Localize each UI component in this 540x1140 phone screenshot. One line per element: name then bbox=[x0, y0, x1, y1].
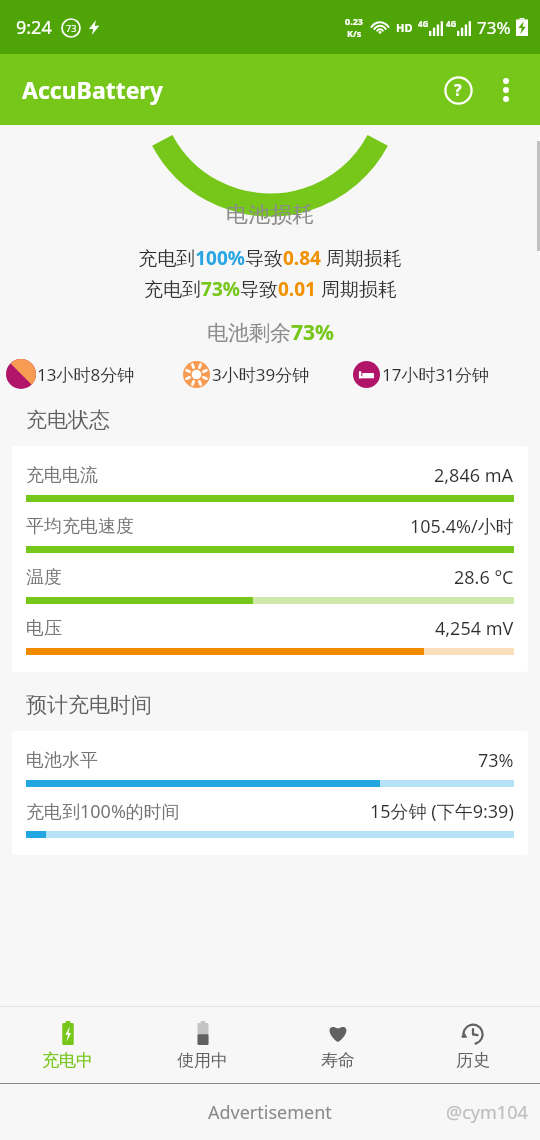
staticText: AccuBattery bbox=[22, 74, 163, 105]
staticText: 充电到73%导致0.01 周期损耗 bbox=[144, 276, 397, 302]
staticText: 4,254 mV bbox=[435, 616, 514, 641]
staticText: Advertisement bbox=[208, 1100, 332, 1125]
staticText: ? bbox=[454, 79, 462, 101]
staticText: 使用中 bbox=[177, 1050, 228, 1071]
staticText: 历史 bbox=[456, 1050, 490, 1071]
staticText: 2,846 mA bbox=[434, 463, 514, 488]
staticText: 0.23 bbox=[345, 15, 363, 27]
staticText: 73% bbox=[478, 748, 514, 773]
staticText: 13小时8分钟 bbox=[37, 363, 135, 386]
staticText: 充电中 bbox=[42, 1050, 93, 1071]
staticText: 17小时31分钟 bbox=[382, 363, 489, 386]
staticText: 充电到100%导致0.84 周期损耗 bbox=[138, 245, 402, 271]
staticText: 电池剩余73% bbox=[207, 318, 334, 347]
staticText: 73% bbox=[477, 16, 511, 39]
staticText: 4G bbox=[446, 18, 457, 29]
staticText: 温度 bbox=[26, 566, 62, 589]
staticText: 73 bbox=[66, 22, 77, 34]
button[interactable]: Help bbox=[434, 66, 482, 114]
staticText: 充电到100%的时间 bbox=[26, 799, 180, 824]
button[interactable]: Charging bbox=[0, 1007, 135, 1083]
staticText: 15分钟 (下午9:39) bbox=[370, 799, 514, 824]
button[interactable]: History bbox=[405, 1007, 540, 1083]
staticText: 平均充电速度 bbox=[26, 515, 134, 538]
staticText: 电池损耗 bbox=[226, 201, 314, 229]
staticText: 充电电流 bbox=[26, 464, 98, 487]
staticText: 4G bbox=[418, 18, 429, 29]
button[interactable]: Health bbox=[270, 1007, 405, 1083]
staticText: HD bbox=[396, 20, 413, 35]
staticText: 3小时39分钟 bbox=[212, 363, 310, 386]
staticText: 28.6 °C bbox=[454, 565, 514, 590]
staticText: 105.4%/小时 bbox=[410, 514, 514, 539]
button[interactable]: Discharging bbox=[135, 1007, 270, 1083]
staticText: 寿命 bbox=[321, 1050, 355, 1071]
button[interactable]: 电池水平 bbox=[12, 731, 528, 855]
staticText: K/s bbox=[347, 27, 362, 39]
button[interactable]: 充电电流 bbox=[12, 446, 528, 672]
staticText: 9:24 bbox=[16, 15, 52, 40]
staticText: 电池水平 bbox=[26, 749, 98, 772]
button[interactable]: More options bbox=[482, 66, 530, 114]
staticText: @cym104 bbox=[446, 1100, 528, 1125]
staticText: 预计充电时间 bbox=[26, 692, 152, 718]
staticText: 充电状态 bbox=[26, 407, 110, 433]
staticText: 电压 bbox=[26, 617, 62, 640]
